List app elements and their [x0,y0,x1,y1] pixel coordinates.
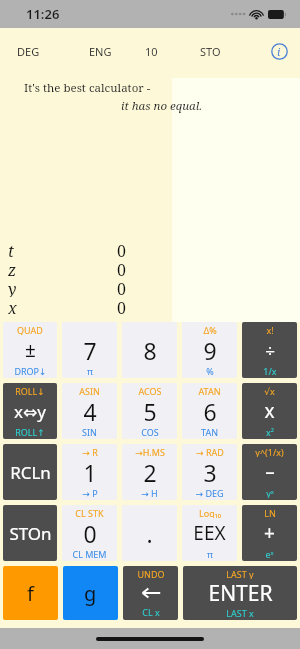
staticText: π [207,548,213,559]
staticText: → DEG [195,487,224,498]
staticText: 0 [117,278,126,297]
button[interactable]: LAST y [183,566,297,620]
staticText: CL MEM [72,548,107,559]
button[interactable]: ROLL↓ [3,383,57,439]
staticText: % [206,365,214,376]
staticText: x² [266,426,274,437]
staticText: DROP↓ [14,365,47,376]
staticText: 4 [83,396,97,426]
staticText: f [27,580,34,607]
staticText: → P [82,487,98,498]
staticText: 3 [203,457,217,487]
staticText: ROLL↓ [15,385,45,396]
staticText: 2 [143,457,157,487]
staticText: 1/x [263,365,277,376]
button[interactable]: STOn [3,505,57,561]
staticText: ÷ [265,339,275,362]
button[interactable]: √x [242,383,297,439]
staticText: RCLn [10,461,51,484]
button[interactable]: Info [266,38,292,64]
staticText: UNDO [137,568,165,580]
staticText: COS [141,426,159,437]
staticText: ± [25,337,36,363]
staticText: . [146,518,153,548]
button[interactable]: ATAN [182,383,237,439]
staticText: QUAD [17,324,43,335]
button[interactable]: x! [242,322,297,378]
staticText: + [264,520,275,546]
staticText: Log₁₀ [199,507,221,518]
button[interactable]: f [3,566,58,620]
staticText: EEX [193,520,226,546]
staticText: → RAD [196,446,224,457]
button[interactable]: QUAD [3,322,57,378]
staticText: CL x [142,606,160,618]
staticText: i [277,44,281,59]
button[interactable]: LN [242,505,297,561]
staticText: 0 [83,518,97,548]
button[interactable]: DEG [15,40,42,63]
button[interactable]: CL STK [62,505,117,561]
staticText: → R [82,446,98,457]
staticText: ENTER [208,579,273,607]
button[interactable]: ENG [87,40,114,63]
staticText: 8 [143,335,157,365]
staticText: yˣ [266,487,274,498]
staticText: → H [141,487,158,498]
staticText: x⇔y [14,400,46,423]
button[interactable]: → RAD [182,444,237,500]
staticText: STOn [9,522,52,545]
staticText: 9 [203,335,217,365]
staticText: ASIN [79,385,100,396]
staticText: LN [264,507,276,518]
button[interactable]: 7 [62,322,117,378]
button[interactable]: → R [62,444,117,500]
staticText: ENG [89,44,112,59]
button[interactable]: Δ% [182,322,237,378]
button[interactable]: ACOS [122,383,177,439]
button[interactable]: RCLn [3,444,57,500]
button[interactable]: g [63,566,118,620]
staticText: y^(1/x) [255,446,284,457]
staticText: ATAN [198,385,221,396]
button[interactable]: 8 [122,322,177,378]
button[interactable]: y^(1/x) [242,444,297,500]
staticText: z [8,259,17,278]
staticText: Δ% [203,324,217,335]
staticText: TAN [201,426,218,437]
staticText: 7 [83,335,97,365]
staticText: ACOS [138,385,162,396]
staticText: x [264,398,275,424]
button[interactable]: →H.MS [122,444,177,500]
button[interactable]: Backspace [123,566,178,620]
staticText: LAST y [226,568,254,579]
staticText: 1 [83,457,97,487]
staticText: CL STK [75,507,104,518]
staticText: It's the best calculator - [24,80,151,96]
staticText: – [265,459,275,485]
staticText: it has no equal. [121,98,203,114]
staticText: 11:26 [26,5,60,23]
staticText: →H.MS [135,446,165,457]
staticText: x! [266,324,274,335]
button[interactable]: 10 [143,40,160,63]
button[interactable]: Log₁₀ [182,505,237,561]
staticText: 6 [203,396,217,426]
button[interactable]: ASIN [62,383,117,439]
staticText: t [8,240,14,259]
staticText: eˣ [265,548,274,559]
staticText: DEG [17,44,40,59]
staticText: 5 [143,396,157,426]
staticText: 0 [117,297,126,316]
staticText: LAST x [226,607,254,618]
staticText: ROLL↑ [15,426,45,437]
staticText: STO [200,44,221,59]
staticText: SIN [82,426,97,437]
staticText: 10 [145,44,158,59]
staticText: 0 [117,259,126,278]
button[interactable]: . [122,505,177,561]
staticText: g [84,580,97,607]
button[interactable]: STO [198,40,223,63]
staticText: x [8,297,17,316]
staticText: √x [264,385,275,396]
